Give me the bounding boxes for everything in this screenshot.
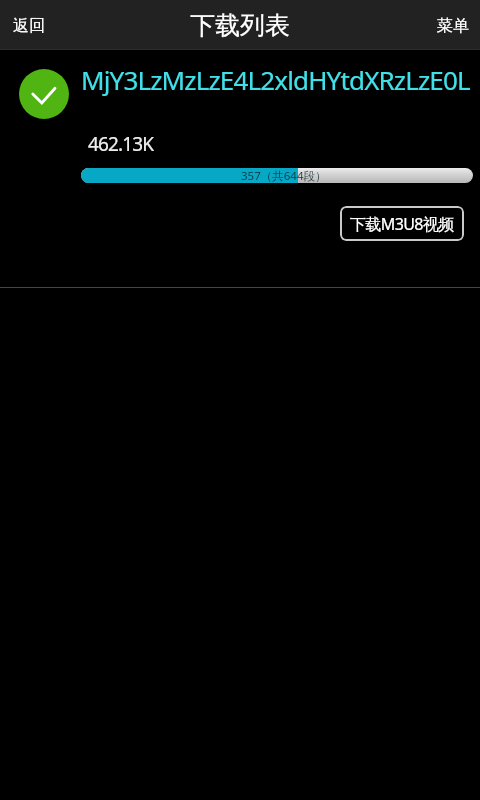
staticText: 357（共644段） <box>241 168 327 183</box>
button[interactable]: 菜单 <box>424 1 480 49</box>
staticText: 462.13K <box>88 131 154 157</box>
button[interactable]: MjY3LzMzLzE4L2xldHYtdXRzLzE0L <box>0 50 480 288</box>
staticText: 下载列表 <box>190 10 290 41</box>
staticText: 菜单 <box>437 16 469 36</box>
staticText: 返回 <box>13 16 45 36</box>
button[interactable]: 返回 <box>0 1 58 49</box>
button[interactable]: 下载M3U8视频 <box>340 206 464 241</box>
staticText: MjY3LzMzLzE4L2xldHYtdXRzLzE0L <box>81 62 470 97</box>
staticText: 下载M3U8视频 <box>350 213 454 235</box>
